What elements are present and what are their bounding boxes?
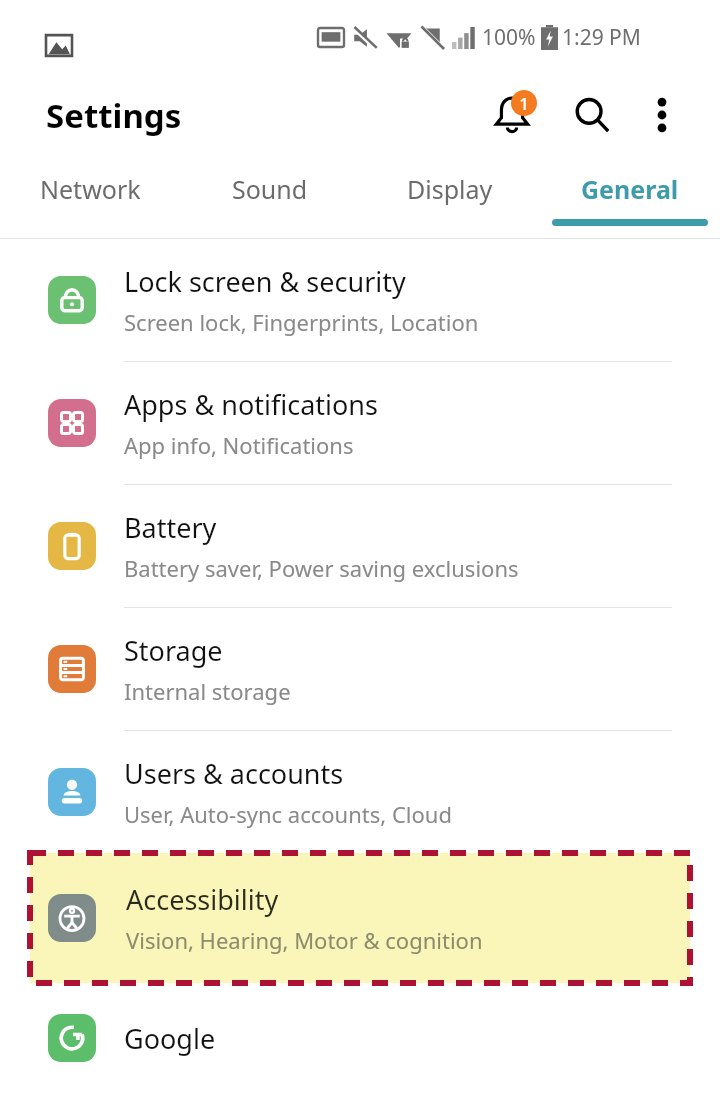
button[interactable]: Accessibility [30, 853, 690, 983]
staticText: Apps & notifications [124, 386, 378, 423]
button[interactable]: More options [632, 85, 692, 145]
staticText: 100% [482, 23, 536, 52]
button[interactable]: General [540, 156, 720, 238]
button[interactable]: Network [0, 156, 180, 238]
staticText: General [581, 172, 679, 206]
staticText: Battery [124, 509, 217, 546]
button[interactable]: Users & accounts [0, 731, 720, 853]
button[interactable]: Apps & notifications [0, 362, 720, 484]
button[interactable]: Search [560, 83, 624, 147]
button[interactable]: Sound [180, 156, 360, 238]
staticText: App info, Notifications [124, 430, 354, 460]
button[interactable]: Storage [0, 608, 720, 730]
staticText: Accessibility [126, 881, 279, 918]
staticText: Network [40, 172, 141, 206]
staticText: Screen lock, Fingerprints, Location [124, 307, 479, 337]
staticText: 1:29 PM [562, 23, 641, 52]
staticText: Settings [46, 93, 182, 138]
button[interactable]: Battery [0, 485, 720, 607]
staticText: Storage [124, 632, 223, 669]
staticText: Display [407, 172, 493, 206]
staticText: Sound [232, 172, 308, 206]
button[interactable]: Notifications [478, 81, 546, 149]
staticText: Users & accounts [124, 755, 344, 792]
button[interactable]: Lock screen & security [0, 239, 720, 361]
staticText: 1 [519, 92, 529, 115]
staticText: Lock screen & security [124, 263, 406, 300]
staticText: User, Auto-sync accounts, Cloud [124, 799, 452, 829]
staticText: Internal storage [124, 676, 291, 706]
staticText: Vision, Hearing, Motor & cognition [126, 925, 483, 955]
button[interactable]: Display [360, 156, 540, 238]
staticText: Battery saver, Power saving exclusions [124, 553, 519, 583]
staticText: Google [124, 1020, 216, 1057]
button[interactable]: Google [0, 983, 720, 1093]
